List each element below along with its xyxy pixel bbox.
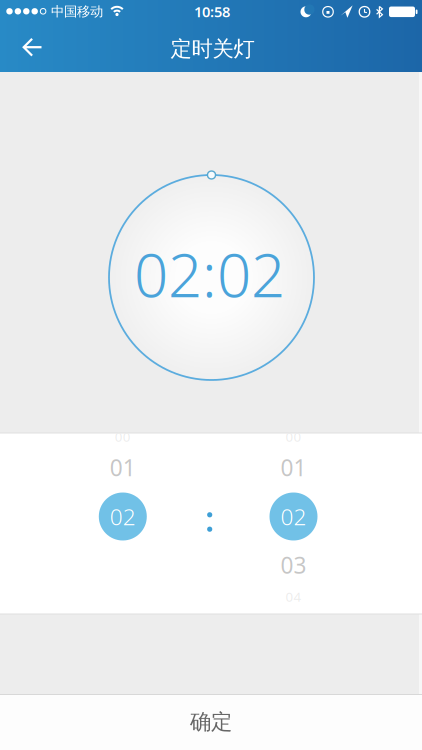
staticText: 03	[280, 550, 306, 580]
staticText: 中国移动	[51, 3, 103, 20]
staticText: 00	[115, 428, 131, 445]
staticText: 01	[280, 452, 306, 482]
button[interactable]: 02	[99, 492, 147, 540]
button[interactable]: Back	[12, 28, 52, 67]
staticText: 定时关灯	[170, 36, 254, 62]
staticText: 确定	[190, 709, 232, 735]
button[interactable]: 02	[269, 492, 317, 540]
button[interactable]: 确定	[0, 694, 422, 750]
staticText: 04	[285, 588, 301, 605]
staticText: 01	[110, 452, 136, 482]
staticText: 02:02	[134, 234, 285, 314]
staticText: 00	[285, 428, 301, 445]
staticText: 10:58	[194, 2, 230, 21]
staticText: 02	[110, 501, 136, 531]
staticText: 02	[280, 501, 306, 531]
